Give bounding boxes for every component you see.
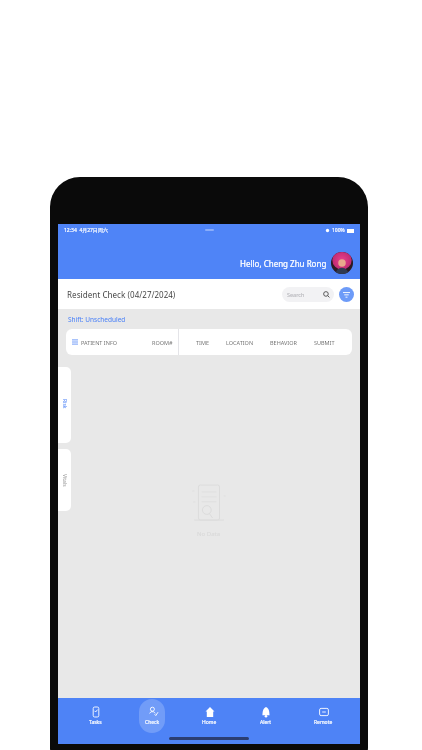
staticText: Resident Check (04/27/2024)	[67, 289, 176, 300]
staticText: TIME	[196, 339, 209, 346]
staticText: No Data	[197, 530, 221, 538]
staticText: Hello, Cheng Zhu Rong	[240, 258, 327, 269]
staticText: Check	[145, 719, 160, 726]
staticText: PATIENT INFO	[81, 339, 118, 346]
staticText: 100%	[332, 227, 345, 234]
staticText: SUBMIT	[314, 339, 335, 346]
staticText: Remote	[314, 719, 333, 726]
staticText: ROOM#	[152, 339, 173, 346]
staticText: Search	[287, 291, 305, 298]
button[interactable]: Remote	[303, 698, 343, 734]
button[interactable]: Filter	[339, 287, 354, 302]
staticText: Shift: Unscheduled	[68, 315, 126, 324]
button[interactable]: Home	[189, 698, 229, 734]
button[interactable]: Check	[132, 698, 172, 734]
staticText: BEHAVIOR	[270, 339, 297, 346]
staticText: 12:34 4月27日周六	[64, 227, 108, 234]
staticText: Tasks	[89, 719, 102, 726]
staticText: Risk Check	[61, 399, 68, 412]
button[interactable]: Tasks	[75, 698, 115, 734]
staticText: Alert	[260, 719, 272, 726]
button[interactable]: Profile	[331, 252, 353, 274]
button[interactable]: Search	[282, 287, 334, 302]
button[interactable]: Vitals	[58, 449, 71, 511]
staticText: Vitals	[61, 474, 68, 487]
button[interactable]: Risk Check	[58, 367, 71, 443]
staticText: LOCATION	[226, 339, 254, 346]
staticText: Home	[202, 719, 217, 726]
button[interactable]: Alert	[246, 698, 286, 734]
